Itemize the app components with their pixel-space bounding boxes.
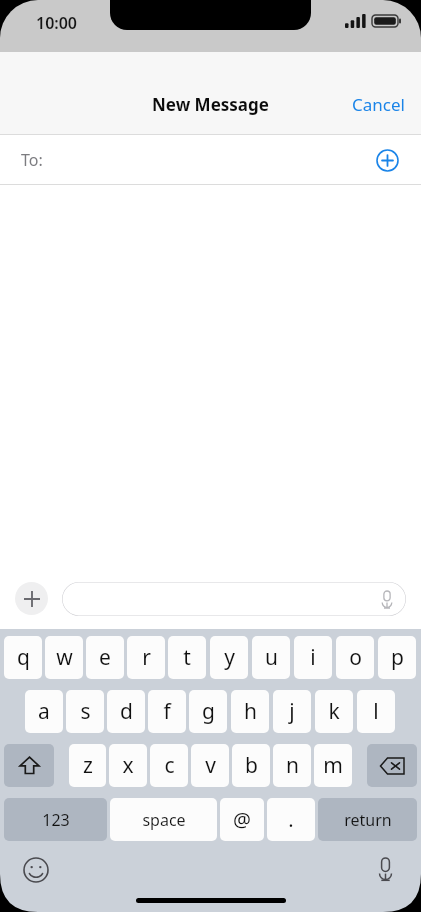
button[interactable]: return [318, 798, 417, 841]
button[interactable]: . [267, 798, 315, 841]
staticText: w [56, 643, 73, 672]
staticText: v [205, 751, 216, 780]
staticText: i [310, 643, 316, 672]
button[interactable]: @ [220, 798, 264, 841]
button[interactable]: Add attachment [15, 582, 48, 615]
staticText: n [286, 751, 299, 780]
staticText: . [288, 806, 294, 833]
staticText: m [323, 751, 343, 780]
button[interactable]: Add contact [375, 148, 399, 172]
button[interactable]: c [150, 744, 188, 787]
button[interactable]: y [210, 636, 248, 679]
button[interactable] [62, 582, 406, 616]
button[interactable]: w [45, 636, 83, 679]
button[interactable]: Dictation [371, 856, 399, 884]
staticText: l [373, 697, 379, 726]
other: Backspace [367, 744, 417, 787]
button[interactable]: h [231, 690, 269, 733]
button[interactable] [4, 744, 54, 787]
button[interactable]: d [107, 690, 145, 733]
button[interactable]: p [378, 636, 416, 679]
button[interactable] [367, 744, 417, 787]
button[interactable]: u [252, 636, 290, 679]
staticText: t [183, 643, 191, 672]
button[interactable]: x [109, 744, 147, 787]
staticText: j [289, 697, 295, 726]
staticText: return [344, 809, 392, 831]
staticText: s [80, 697, 91, 726]
staticText: f [163, 697, 171, 726]
staticText: k [328, 697, 340, 726]
button[interactable]: a [25, 690, 63, 733]
button[interactable]: Emoji [22, 856, 50, 884]
button[interactable]: q [4, 636, 42, 679]
staticText: Cancel [352, 93, 405, 116]
button[interactable]: z [69, 744, 106, 787]
staticText: p [391, 643, 404, 672]
button[interactable]: o [336, 636, 374, 679]
staticText: New Message [152, 93, 269, 116]
button[interactable]: n [273, 744, 311, 787]
staticText: q [17, 643, 30, 672]
button[interactable]: 123 [4, 798, 107, 841]
staticText: g [202, 697, 215, 726]
staticText: space [142, 809, 186, 831]
button[interactable]: s [66, 690, 104, 733]
staticText: To: [21, 149, 43, 171]
button[interactable]: b [232, 744, 270, 787]
staticText: h [244, 697, 257, 726]
staticText: 10:00 [36, 12, 78, 34]
staticText: u [265, 643, 278, 672]
button[interactable]: m [314, 744, 352, 787]
staticText: x [122, 751, 134, 780]
button[interactable]: i [294, 636, 332, 679]
button[interactable]: f [148, 690, 186, 733]
button[interactable]: Cancel [336, 85, 421, 124]
button[interactable]: l [357, 690, 395, 733]
button[interactable]: t [168, 636, 206, 679]
staticText: r [142, 643, 151, 672]
other: Shift [4, 744, 54, 787]
button[interactable]: space [110, 798, 217, 841]
staticText: b [245, 751, 258, 780]
staticText: e [99, 643, 111, 672]
button[interactable]: v [191, 744, 229, 787]
staticText: a [38, 697, 50, 726]
button[interactable]: To: [0, 135, 421, 184]
button[interactable]: k [315, 690, 353, 733]
staticText: y [224, 643, 235, 672]
button[interactable]: r [127, 636, 165, 679]
staticText: d [120, 697, 133, 726]
staticText: z [83, 751, 93, 780]
staticText: o [349, 643, 362, 672]
button[interactable]: e [86, 636, 124, 679]
staticText: c [164, 751, 175, 780]
button[interactable]: g [189, 690, 227, 733]
staticText: 123 [42, 809, 70, 831]
button[interactable]: j [273, 690, 311, 733]
staticText: @ [233, 806, 251, 833]
